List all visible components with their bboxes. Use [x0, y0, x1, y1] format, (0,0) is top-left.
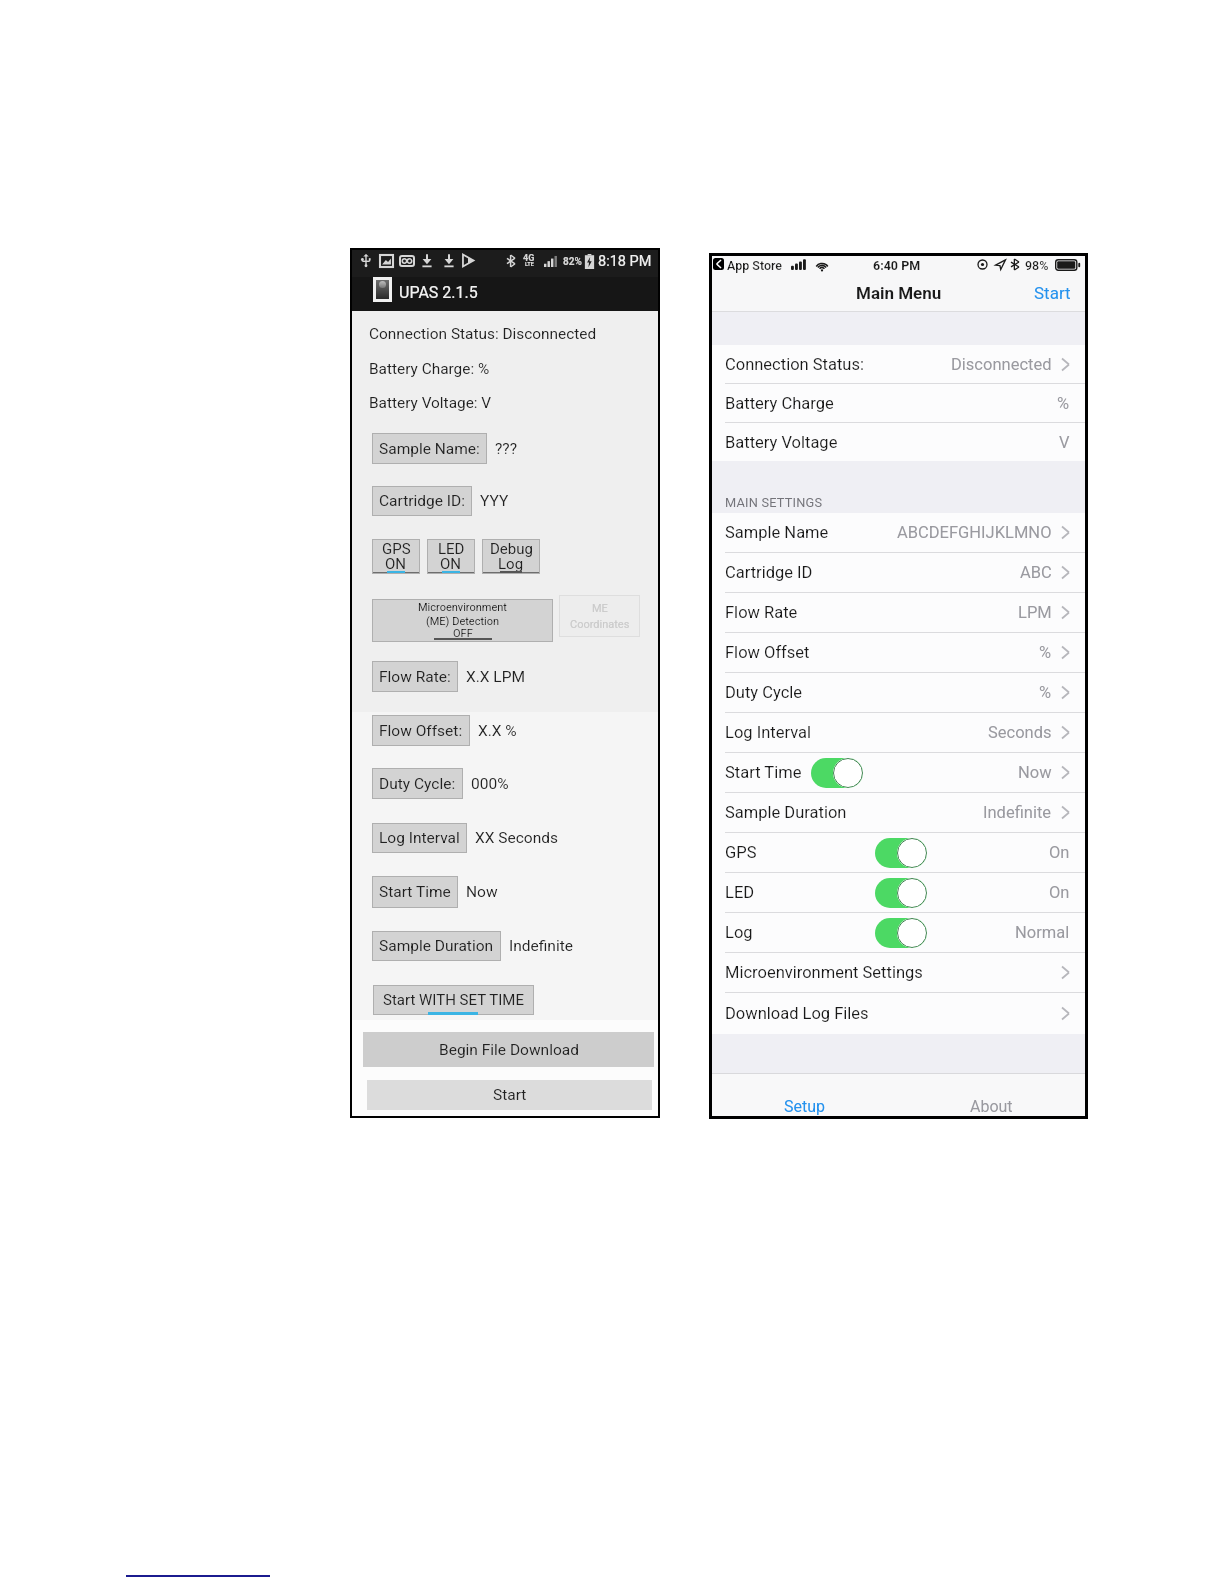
button[interactable]: Flow Rate: [712, 593, 1085, 632]
staticText: Battery Voltage: [725, 433, 838, 452]
button[interactable]: GPS: [372, 539, 420, 574]
staticText: Connection Status:: [725, 355, 864, 374]
staticText: Flow Offset:: [379, 722, 463, 740]
button[interactable]: Flow Rate:: [372, 661, 458, 692]
button[interactable]: Battery Voltage: [712, 423, 1085, 461]
button[interactable]: Duty Cycle: [712, 673, 1085, 712]
staticText: Log Interval: [379, 829, 460, 847]
staticText: 000%: [471, 775, 509, 793]
staticText: 6:40 PM: [873, 258, 921, 273]
button[interactable]: Duty Cycle:: [372, 768, 463, 799]
button[interactable]: Setup: [712, 1092, 898, 1120]
staticText: Indefinite: [509, 937, 573, 955]
button[interactable]: About: [898, 1092, 1085, 1120]
staticText: 8:18 PM: [598, 253, 652, 270]
staticText: Setup: [784, 1097, 826, 1116]
button[interactable]: Sample Name: [712, 513, 1085, 552]
staticText: Begin File Download: [439, 1041, 579, 1059]
staticText: LED: [725, 883, 755, 902]
staticText: X.X %: [478, 722, 517, 740]
button[interactable]: Start WITH SET TIME: [373, 985, 534, 1015]
staticText: Sample Name: [725, 523, 829, 542]
staticText: ON: [385, 555, 407, 572]
staticText: Flow Rate:: [379, 668, 451, 686]
button[interactable]: Sample Duration: [712, 793, 1085, 832]
button[interactable]: LED: [712, 873, 1085, 912]
button[interactable]: Download Log Files: [712, 993, 1085, 1034]
button[interactable]: Cartridge ID: [712, 553, 1085, 592]
staticText: Coordinates: [570, 618, 630, 631]
button[interactable]: LED toggle, on: [875, 878, 927, 908]
button[interactable]: Back to App Store: [713, 258, 724, 270]
staticText: XX Seconds: [475, 829, 558, 847]
staticText: 4G: [523, 253, 535, 264]
staticText: Sample Name:: [379, 440, 480, 458]
staticText: LED: [438, 540, 465, 557]
staticText: Sample Duration: [725, 803, 847, 822]
button[interactable]: Start Time: [712, 753, 1085, 792]
button[interactable]: Sample Duration: [372, 931, 501, 961]
button[interactable]: Sample Name:: [372, 433, 487, 464]
staticText: Microenvironment Settings: [725, 963, 923, 982]
button[interactable]: Log toggle, on: [875, 918, 927, 948]
staticText: Microenvironment: [418, 601, 507, 614]
staticText: Start Time: [725, 763, 802, 782]
button[interactable]: Begin File Download: [363, 1032, 654, 1067]
staticText: Log: [725, 923, 753, 942]
staticText: Sample Duration: [379, 937, 494, 955]
staticText: %: [1057, 394, 1070, 413]
button[interactable]: Debug: [482, 539, 540, 574]
staticText: GPS: [725, 843, 757, 862]
button[interactable]: Cartridge ID:: [372, 486, 472, 516]
staticText: Duty Cycle: [725, 683, 803, 702]
button[interactable]: Start: [1020, 273, 1085, 312]
staticText: ABC: [1020, 563, 1052, 582]
staticText: Battery Charge: [725, 394, 834, 413]
staticText: Main Menu: [856, 283, 942, 303]
button[interactable]: Start: [367, 1080, 652, 1110]
staticText: Normal: [1015, 923, 1070, 942]
button[interactable]: GPS: [712, 833, 1085, 872]
staticText: (ME) Detection: [426, 615, 500, 628]
button[interactable]: Flow Offset: [712, 633, 1085, 672]
staticText: App Store: [727, 258, 783, 273]
staticText: YYY: [480, 492, 509, 510]
staticText: 82%: [563, 256, 582, 268]
staticText: OFF: [453, 627, 473, 640]
button[interactable]: ME: [559, 595, 640, 637]
staticText: On: [1049, 883, 1070, 902]
button[interactable]: Battery Charge: [712, 384, 1085, 422]
staticText: ON: [440, 555, 462, 572]
staticText: UPAS 2.1.5: [399, 283, 478, 302]
staticText: Flow Rate: [725, 603, 798, 622]
staticText: Start WITH SET TIME: [383, 991, 524, 1009]
staticText: Flow Offset: [725, 643, 810, 662]
staticText: ME: [592, 602, 608, 615]
staticText: Log Interval: [725, 723, 811, 742]
button[interactable]: Microenvironment Settings: [712, 953, 1085, 992]
staticText: Indefinite: [983, 803, 1052, 822]
button[interactable]: Start Time: [372, 876, 458, 908]
button[interactable]: Log Interval: [372, 823, 467, 853]
button[interactable]: LED: [427, 539, 475, 574]
button[interactable]: Microenvironment: [372, 599, 553, 642]
staticText: Cartridge ID: [725, 563, 813, 582]
button[interactable]: Log: [712, 913, 1085, 952]
staticText: Start: [493, 1086, 527, 1104]
button[interactable]: Connection Status:: [712, 345, 1085, 383]
staticText: ???: [495, 440, 517, 458]
button[interactable]: GPS toggle, on: [875, 838, 927, 868]
staticText: Disconnected: [951, 355, 1052, 374]
staticText: Start: [1034, 283, 1071, 303]
staticText: About: [970, 1097, 1013, 1116]
staticText: X.X LPM: [466, 668, 526, 686]
button[interactable]: Log Interval: [712, 713, 1085, 752]
button[interactable]: Start Time toggle, on: [811, 758, 863, 788]
staticText: Battery Voltage: V: [369, 394, 492, 412]
staticText: %: [1039, 643, 1052, 662]
staticText: GPS: [382, 540, 411, 557]
staticText: Duty Cycle:: [379, 775, 456, 793]
button[interactable]: Flow Offset:: [372, 715, 470, 746]
staticText: On: [1049, 843, 1070, 862]
staticText: Start Time: [379, 883, 451, 901]
